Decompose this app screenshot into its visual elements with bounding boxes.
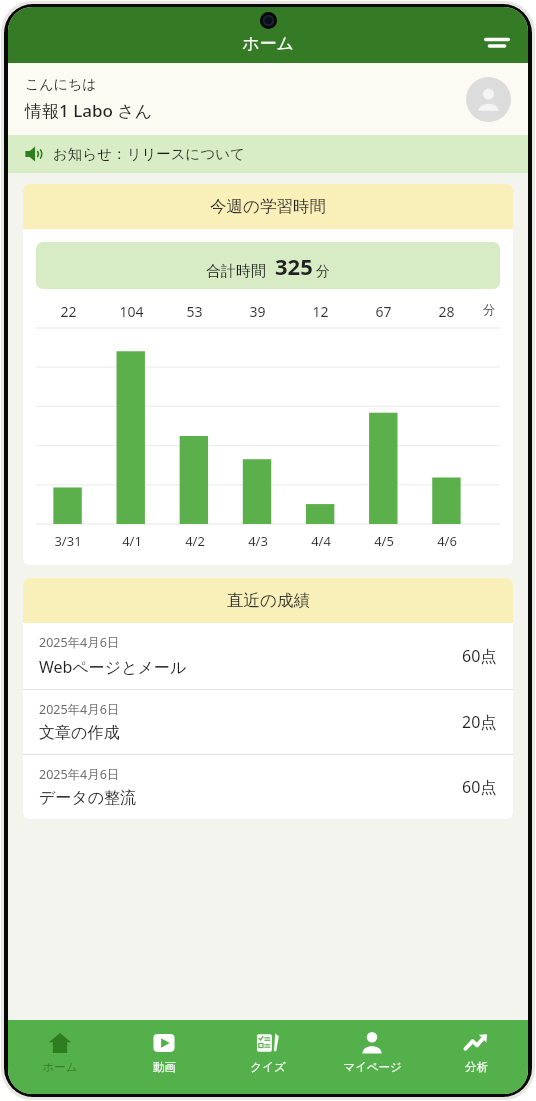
staticText: お知らせ：リリースについて	[53, 145, 245, 163]
staticText: 合計時間	[206, 262, 266, 281]
staticText: 22	[60, 302, 77, 321]
button[interactable]: Menu	[478, 24, 516, 62]
button[interactable]: 動画	[112, 1020, 216, 1094]
staticText: 20点	[462, 711, 497, 733]
staticText: 60点	[462, 776, 497, 798]
staticText: ホーム	[42, 1060, 78, 1074]
button[interactable]: 2025年4月6日	[23, 755, 513, 819]
staticText: 今週の学習時間	[210, 196, 326, 217]
staticText: 4/2	[185, 532, 205, 550]
staticText: マイページ	[343, 1060, 402, 1074]
staticText: 104	[119, 302, 144, 321]
staticText: 4/5	[374, 532, 394, 550]
staticText: ホーム	[242, 33, 294, 54]
staticText: 直近の成績	[227, 590, 310, 611]
staticText: 53	[186, 302, 203, 321]
staticText: 4/6	[437, 532, 457, 550]
staticText: 分	[483, 302, 496, 318]
button[interactable]: 分析	[424, 1020, 528, 1094]
staticText: クイズ	[250, 1060, 286, 1074]
staticText: 325	[275, 251, 313, 281]
staticText: 2025年4月6日	[39, 766, 120, 783]
staticText: こんにちは	[25, 76, 97, 94]
button[interactable]: クイズ	[216, 1020, 320, 1094]
staticText: Webページとメール	[39, 656, 187, 678]
staticText: 4/1	[122, 532, 142, 550]
staticText: 67	[375, 302, 392, 321]
staticText: データの整流	[39, 788, 137, 808]
button[interactable]: お知らせ：リリースについて	[8, 135, 528, 173]
staticText: 4/3	[248, 532, 268, 550]
staticText: 39	[249, 302, 266, 321]
staticText: 4/4	[311, 532, 331, 550]
staticText: 文章の作成	[39, 723, 120, 743]
staticText: 2025年4月6日	[39, 634, 120, 651]
staticText: 動画	[153, 1060, 176, 1074]
staticText: 情報1 Labo さん	[25, 99, 153, 122]
staticText: 12	[312, 302, 329, 321]
button[interactable]: マイページ	[320, 1020, 424, 1094]
button[interactable]: 2025年4月6日	[23, 623, 513, 689]
staticText: 3/31	[54, 532, 82, 550]
button[interactable]: 2025年4月6日	[23, 690, 513, 754]
staticText: 分	[316, 263, 330, 281]
staticText: 分析	[465, 1060, 488, 1074]
staticText: 28	[438, 302, 455, 321]
staticText: 2025年4月6日	[39, 701, 120, 718]
staticText: 60点	[462, 645, 497, 667]
button[interactable]: ホーム	[8, 1020, 112, 1094]
button[interactable]: Account	[466, 77, 511, 122]
